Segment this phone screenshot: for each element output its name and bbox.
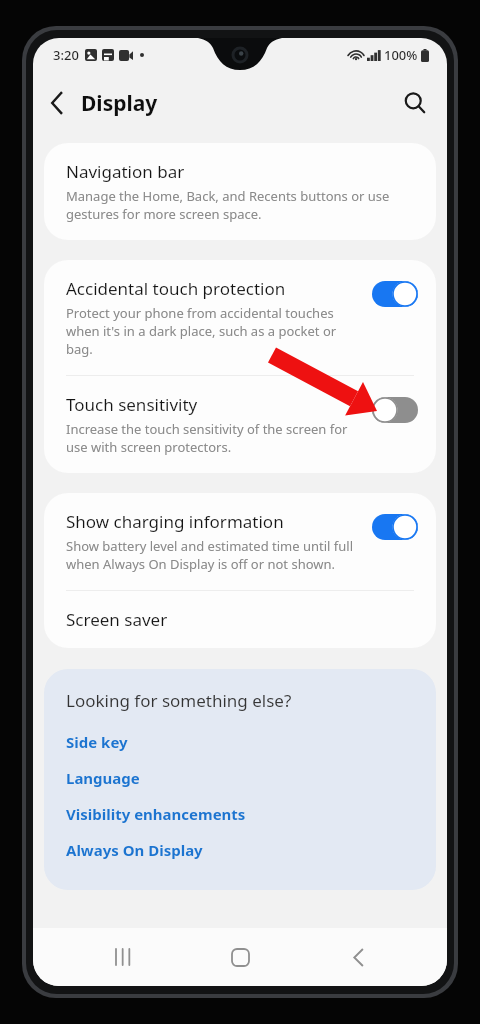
button[interactable]: Back [33,79,81,127]
button[interactable]: Always On Display [66,832,416,868]
staticText: Increase the touch sensitivity of the sc… [66,420,360,456]
staticText: Protect your phone from accidental touch… [66,304,360,358]
button[interactable]: Screen saver [44,591,436,648]
staticText: Show battery level and estimated time un… [66,537,360,573]
staticText: Accidental touch protection [66,277,286,300]
staticText: Navigation bar [66,160,185,183]
staticText: Looking for something else? [66,689,292,712]
button[interactable]: Search [391,79,439,127]
button[interactable]: Visibility enhancements [66,796,416,832]
staticText: 3:20 [53,46,79,64]
button[interactable]: Recents [95,929,151,985]
staticText: Screen saver [66,608,168,631]
button[interactable]: Show charging information on [370,512,420,542]
staticText: Side key [66,732,128,752]
staticText: 100% [384,46,418,64]
button[interactable]: Language [66,760,416,796]
staticText: Show charging information [66,510,284,533]
staticText: Always On Display [66,840,203,860]
staticText: Language [66,768,140,788]
button[interactable]: Show charging information [44,493,436,590]
button[interactable]: Home [212,929,268,985]
button[interactable]: Touch sensitivity [44,376,436,473]
button[interactable]: Accidental touch protection [44,260,436,375]
staticText: Display [81,89,158,118]
staticText: Touch sensitivity [66,393,198,416]
button[interactable]: Side key [66,724,416,760]
staticText: Visibility enhancements [66,804,246,824]
button[interactable]: Touch sensitivity off [370,395,420,425]
button[interactable]: Back [330,929,386,985]
staticText: Manage the Home, Back, and Recents butto… [66,187,420,223]
button[interactable]: Navigation bar [44,143,436,240]
button[interactable]: Accidental touch protection on [370,279,420,309]
